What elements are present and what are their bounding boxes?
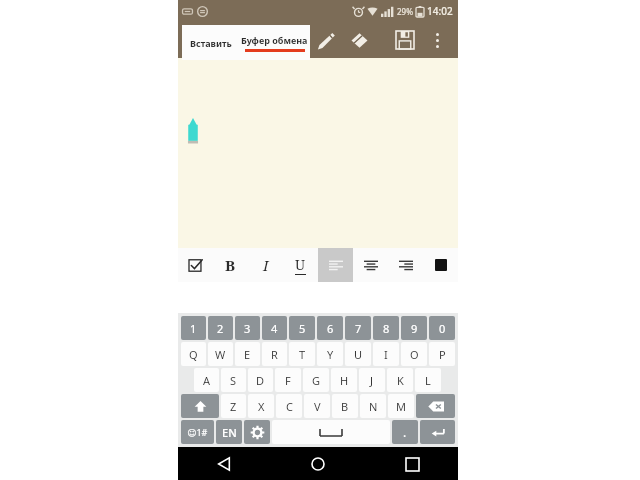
- staticText: W: [215, 347, 226, 362]
- button[interactable]: 5: [289, 316, 315, 340]
- staticText: Вставить: [190, 37, 232, 49]
- button[interactable]: 1: [181, 316, 206, 340]
- button[interactable]: N: [360, 394, 386, 418]
- staticText: 29%: [397, 6, 413, 17]
- button[interactable]: Text colour: [423, 248, 458, 282]
- button[interactable]: Eraser: [342, 23, 376, 57]
- button[interactable]: Language: [216, 420, 242, 444]
- staticText: 9: [411, 321, 418, 336]
- button[interactable]: Z: [221, 394, 246, 418]
- button[interactable]: Backspace: [416, 394, 455, 418]
- button[interactable]: Symbols: [181, 420, 214, 444]
- button[interactable]: E: [235, 342, 260, 366]
- button[interactable]: Underline: [283, 248, 318, 282]
- button[interactable]: 6: [317, 316, 343, 340]
- button[interactable]: H: [331, 368, 357, 392]
- button[interactable]: Bold: [213, 248, 248, 282]
- staticText: .: [403, 424, 407, 440]
- button[interactable]: Space: [272, 420, 390, 444]
- staticText: EN: [222, 425, 237, 440]
- button[interactable]: D: [248, 368, 273, 392]
- staticText: T: [299, 347, 306, 362]
- button[interactable]: A: [194, 368, 219, 392]
- staticText: C: [286, 399, 293, 414]
- button[interactable]: G: [303, 368, 329, 392]
- staticText: 0: [439, 321, 446, 336]
- staticText: B: [225, 255, 236, 275]
- staticText: U: [295, 255, 306, 274]
- button[interactable]: I: [373, 342, 399, 366]
- button[interactable]: X: [248, 394, 274, 418]
- button[interactable]: 2: [208, 316, 233, 340]
- button[interactable]: Home: [302, 448, 334, 480]
- staticText: Q: [189, 347, 198, 362]
- button[interactable]: 0: [429, 316, 455, 340]
- staticText: 6: [327, 321, 334, 336]
- staticText: G: [312, 373, 321, 388]
- button[interactable]: T: [289, 342, 315, 366]
- button[interactable]: Shift: [181, 394, 219, 418]
- button[interactable]: Enter: [420, 420, 455, 444]
- button[interactable]: Back: [208, 448, 240, 480]
- button[interactable]: P: [429, 342, 455, 366]
- staticText: A: [203, 373, 211, 388]
- staticText: 3: [244, 321, 251, 336]
- button[interactable]: U: [345, 342, 371, 366]
- staticText: B: [341, 399, 349, 414]
- button[interactable]: Align left: [318, 248, 353, 282]
- button[interactable]: R: [262, 342, 287, 366]
- button[interactable]: 4: [262, 316, 287, 340]
- staticText: ☺1#: [187, 426, 208, 438]
- button[interactable]: Pen: [308, 23, 342, 57]
- button[interactable]: Recents: [396, 448, 428, 480]
- button[interactable]: S: [221, 368, 246, 392]
- button[interactable]: Settings: [244, 420, 270, 444]
- button[interactable]: F: [275, 368, 301, 392]
- button[interactable]: Буфер обмена: [239, 25, 310, 60]
- staticText: V: [314, 399, 321, 414]
- staticText: Z: [230, 399, 237, 414]
- button[interactable]: 8: [373, 316, 399, 340]
- staticText: D: [256, 373, 265, 388]
- staticText: R: [271, 347, 278, 362]
- staticText: Буфер обмена: [241, 34, 308, 46]
- button[interactable]: Q: [181, 342, 206, 366]
- button[interactable]: W: [208, 342, 233, 366]
- button[interactable]: 3: [235, 316, 260, 340]
- staticText: 7: [355, 321, 362, 336]
- staticText: 5: [299, 321, 306, 336]
- button[interactable]: M: [388, 394, 414, 418]
- staticText: L: [425, 373, 431, 388]
- staticText: M: [396, 399, 406, 414]
- staticText: O: [410, 347, 419, 362]
- staticText: H: [340, 373, 349, 388]
- staticText: 8: [383, 321, 390, 336]
- button[interactable]: Y: [317, 342, 343, 366]
- button[interactable]: J: [359, 368, 385, 392]
- button[interactable]: L: [415, 368, 441, 392]
- staticText: P: [439, 347, 446, 362]
- staticText: N: [369, 399, 378, 414]
- staticText: 2: [217, 321, 224, 336]
- button[interactable]: 7: [345, 316, 371, 340]
- staticText: 1: [190, 321, 197, 336]
- staticText: I: [384, 347, 388, 362]
- button[interactable]: More options: [422, 25, 452, 55]
- button[interactable]: K: [387, 368, 413, 392]
- button[interactable]: Align center: [353, 248, 388, 282]
- button[interactable]: Save: [388, 23, 422, 57]
- staticText: X: [258, 399, 265, 414]
- staticText: E: [244, 347, 251, 362]
- button[interactable]: Align right: [388, 248, 423, 282]
- button[interactable]: O: [401, 342, 427, 366]
- button[interactable]: Italic: [248, 248, 283, 282]
- button[interactable]: Checklist: [178, 248, 213, 282]
- button[interactable]: B: [332, 394, 358, 418]
- staticText: F: [285, 373, 291, 388]
- button[interactable]: Period: [392, 420, 418, 444]
- staticText: S: [230, 373, 237, 388]
- button[interactable]: 9: [401, 316, 427, 340]
- button[interactable]: V: [304, 394, 330, 418]
- button[interactable]: C: [276, 394, 302, 418]
- button[interactable]: Вставить: [182, 25, 239, 60]
